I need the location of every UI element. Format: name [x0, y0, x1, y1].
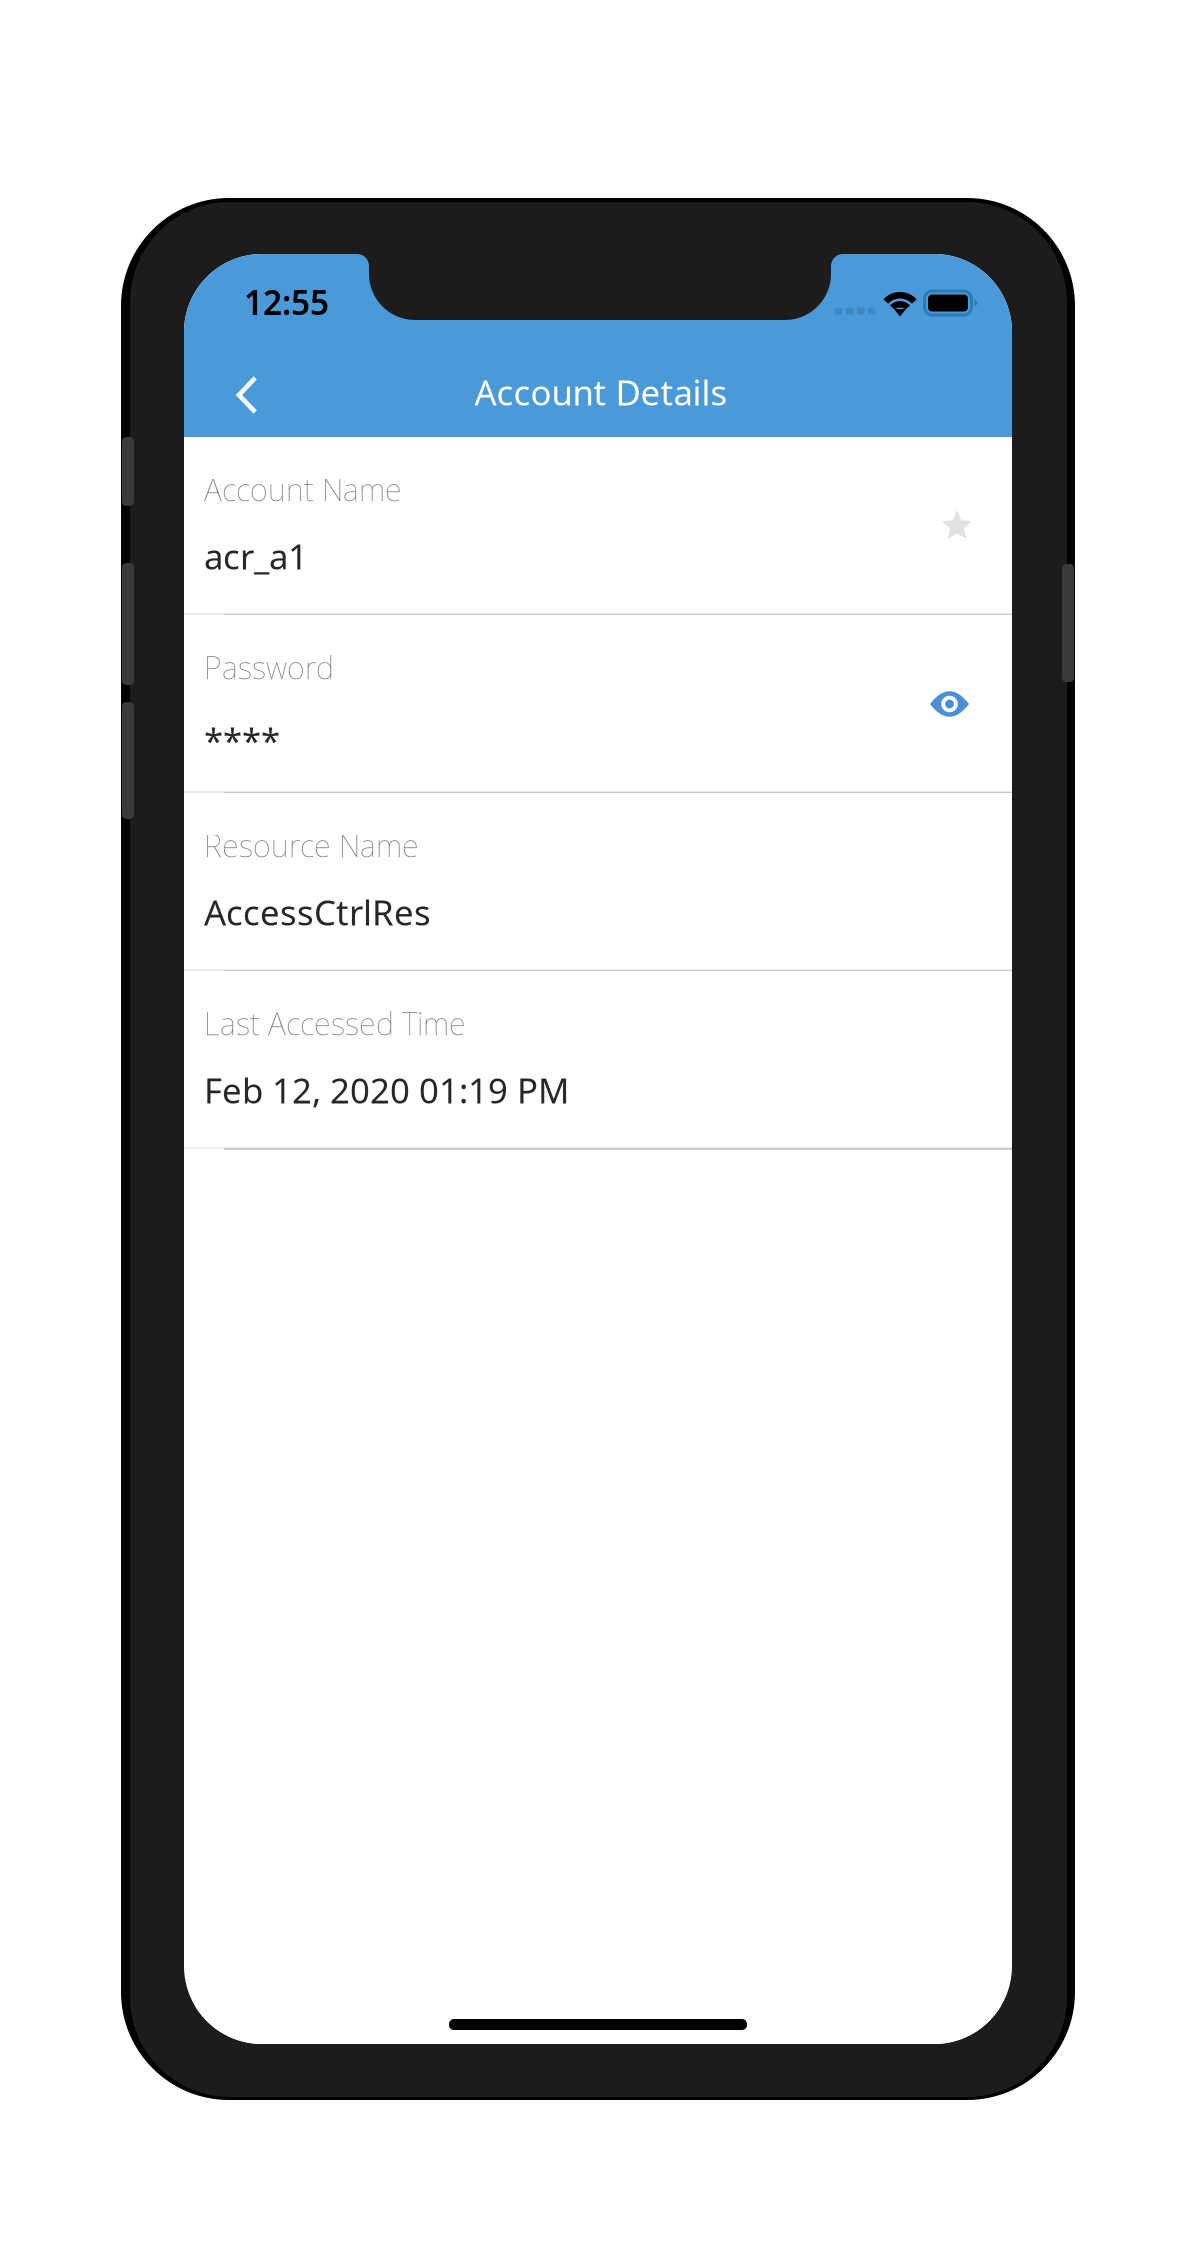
staticText: Account Details — [474, 369, 727, 415]
button[interactable]: Back — [210, 356, 284, 434]
button[interactable]: Favorite — [941, 496, 973, 554]
staticText: Resource Name — [204, 825, 419, 866]
staticText: Account Name — [204, 469, 402, 510]
staticText: Password — [204, 647, 334, 688]
staticText: 12:55 — [244, 280, 329, 324]
staticText: acr_a1 — [204, 533, 308, 579]
button[interactable]: Show password — [930, 675, 969, 733]
staticText: AccessCtrlRes — [204, 889, 431, 935]
staticText: Last Accessed Time — [204, 1003, 466, 1044]
staticText: **** — [204, 717, 280, 763]
staticText: Feb 12, 2020 01:19 PM — [204, 1067, 569, 1113]
